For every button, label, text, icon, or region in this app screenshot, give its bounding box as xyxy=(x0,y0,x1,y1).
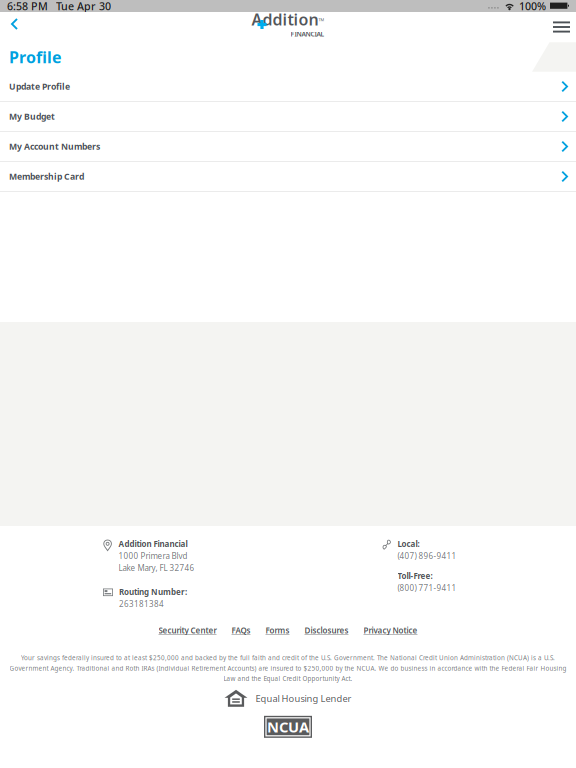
staticText: (407) 896-9411 xyxy=(397,551,456,561)
staticText: My Account Numbers xyxy=(9,141,100,152)
staticText: Government Agency. Traditional and Roth … xyxy=(9,664,566,672)
staticText: Law and the Equal Credit Opportunity Act… xyxy=(223,674,352,683)
button[interactable]: Forms xyxy=(265,625,289,636)
button[interactable]: Update Profile xyxy=(0,72,576,102)
staticText: Lake Mary, FL 32746 xyxy=(118,563,194,573)
staticText: 263181384 xyxy=(119,599,164,609)
staticText: Equal Housing Lender xyxy=(255,692,351,704)
staticText: Local: xyxy=(397,539,419,549)
button[interactable]: Disclosures xyxy=(304,625,348,636)
button[interactable]: My Account Numbers xyxy=(0,132,576,162)
button[interactable]: Membership Card xyxy=(0,162,576,192)
staticText: Toll-Free: xyxy=(397,571,432,581)
staticText: Disclosures xyxy=(304,625,348,636)
staticText: Your savings federally insured to at lea… xyxy=(21,654,555,662)
button[interactable]: Security Center xyxy=(158,625,216,636)
staticText: Routing Number: xyxy=(119,587,187,597)
button[interactable]: My Budget xyxy=(0,102,576,132)
staticText: FAQs xyxy=(231,625,250,636)
button[interactable]: Privacy Notice xyxy=(363,625,417,636)
staticText: Addition Financial xyxy=(118,539,187,549)
staticText: Addition xyxy=(251,9,318,30)
staticText: TM xyxy=(318,17,324,22)
staticText: Update Profile xyxy=(9,81,70,92)
staticText: 1000 Primera Blvd xyxy=(118,551,187,561)
staticText: Membership Card xyxy=(9,171,84,182)
staticText: Privacy Notice xyxy=(363,625,417,636)
staticText: Tue Apr 30 xyxy=(56,0,111,13)
staticText: 100% xyxy=(519,0,546,13)
staticText: (800) 771-9411 xyxy=(397,583,456,593)
staticText: Profile xyxy=(9,46,62,68)
staticText: FINANCIAL xyxy=(290,30,324,38)
staticText: NCUA xyxy=(267,717,309,737)
staticText: 6:58 PM xyxy=(7,0,48,13)
staticText: Forms xyxy=(265,625,289,636)
staticText: Security Center xyxy=(158,625,216,636)
button[interactable]: FAQs xyxy=(231,625,250,636)
button[interactable]: Back xyxy=(0,15,27,39)
button[interactable]: Menu xyxy=(541,12,576,41)
staticText: My Budget xyxy=(9,111,55,122)
